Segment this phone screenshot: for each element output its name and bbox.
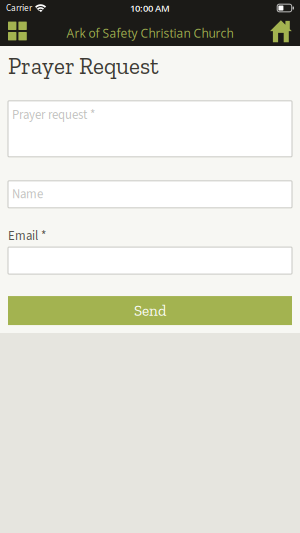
- button[interactable]: Menu: [0, 20, 42, 46]
- button[interactable]: Send: [8, 296, 292, 325]
- staticText: 10:00 AM: [130, 2, 170, 14]
- staticText: Email *: [8, 227, 46, 245]
- staticText: Carrier: [6, 1, 32, 15]
- staticText: Prayer Request: [8, 52, 159, 80]
- button[interactable]: Home: [260, 20, 300, 46]
- staticText: Send: [134, 301, 166, 320]
- staticText: Name: [12, 185, 43, 203]
- staticText: Ark of Safety Christian Church: [66, 25, 233, 41]
- staticText: Prayer request *: [12, 106, 95, 124]
